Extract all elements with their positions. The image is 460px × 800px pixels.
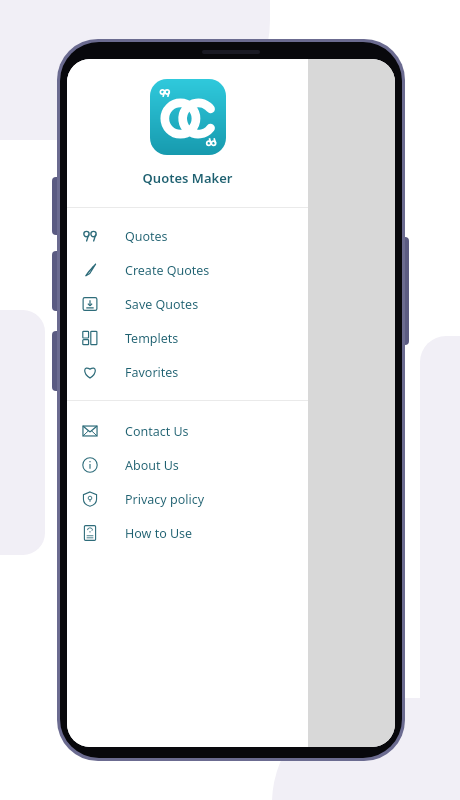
staticText: Favorites (125, 364, 179, 381)
staticText: How to Use (125, 525, 193, 542)
button[interactable]: How to Use (67, 516, 308, 550)
button[interactable]: About Us (67, 448, 308, 482)
staticText: Quotes (125, 228, 168, 245)
staticText: Templets (125, 330, 179, 347)
staticText: Contact Us (125, 423, 189, 440)
button[interactable]: Create Quotes (67, 253, 308, 287)
button[interactable]: Save Quotes (67, 287, 308, 321)
staticText: Privacy policy (125, 491, 205, 508)
button[interactable]: Contact Us (67, 414, 308, 448)
staticText: About Us (125, 457, 179, 474)
button[interactable]: Favorites (67, 355, 308, 389)
staticText: Create Quotes (125, 262, 210, 279)
button[interactable]: Templets (67, 321, 308, 355)
staticText: Save Quotes (125, 296, 199, 313)
button[interactable]: Quotes (67, 219, 308, 253)
staticText: Quotes Maker (67, 169, 308, 187)
button[interactable]: Privacy policy (67, 482, 308, 516)
